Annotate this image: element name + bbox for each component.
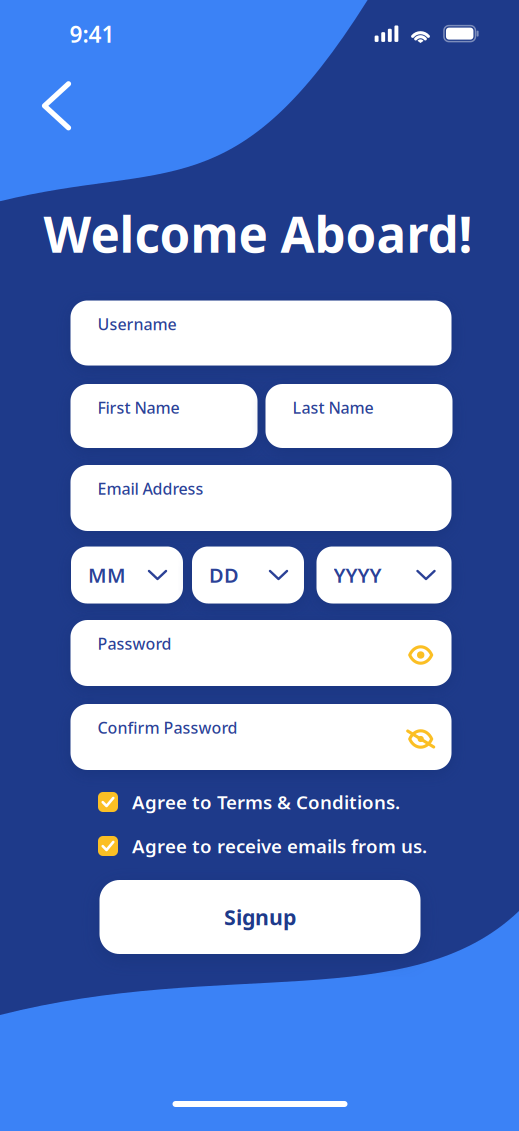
button[interactable]: Username <box>70 300 451 365</box>
button[interactable]: Password <box>70 620 451 686</box>
button[interactable]: DD <box>192 546 304 603</box>
button[interactable]: Confirm Password <box>70 704 451 770</box>
staticText: DD <box>209 562 239 588</box>
staticText: Agree to Terms & Conditions. <box>132 790 400 814</box>
staticText: Welcome Aboard! <box>43 201 472 266</box>
staticText: Agree to receive emails from us. <box>132 834 427 858</box>
staticText: YYYY <box>333 562 381 588</box>
staticText: Username <box>97 313 176 335</box>
staticText: First Name <box>97 397 179 418</box>
staticText: Email Address <box>97 478 203 499</box>
button[interactable]: Signup <box>99 880 420 954</box>
button[interactable]: YYYY <box>316 546 451 603</box>
button[interactable]: Back <box>30 70 82 142</box>
button[interactable]: First Name <box>70 384 257 448</box>
staticText: Signup <box>224 903 296 931</box>
button[interactable]: Last Name <box>265 384 452 448</box>
staticText: Password <box>97 633 171 654</box>
button[interactable]: Agree to receive emails from us. <box>98 834 442 858</box>
button[interactable]: Email Address <box>70 465 451 531</box>
staticText: MM <box>88 562 126 588</box>
staticText: Last Name <box>292 397 373 418</box>
button[interactable]: Agree to Terms & Conditions. <box>98 790 442 814</box>
staticText: 9:41 <box>69 19 114 49</box>
staticText: Confirm Password <box>97 717 237 738</box>
button[interactable]: MM <box>71 546 183 603</box>
